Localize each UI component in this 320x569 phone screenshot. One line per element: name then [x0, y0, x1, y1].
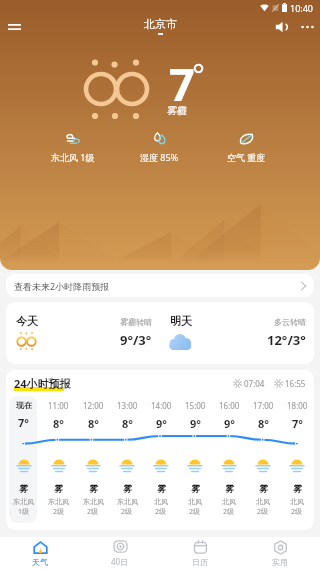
staticText: 12:00	[83, 400, 104, 411]
staticText: 雾	[19, 483, 28, 494]
button[interactable]: More options	[294, 14, 320, 40]
staticText: 湿度 85%	[140, 151, 179, 163]
staticText: 东北风	[13, 497, 34, 506]
staticText: 2级	[155, 507, 167, 517]
button[interactable]: 雾	[246, 448, 280, 517]
staticText: 雾	[293, 483, 302, 494]
staticText: 查看未来2小时降雨预报	[14, 280, 110, 292]
staticText: 东北风 1级	[51, 151, 95, 163]
button[interactable]: 日历	[160, 537, 240, 569]
button[interactable]: 雾	[6, 448, 41, 517]
staticText: 16:55	[285, 378, 306, 389]
button[interactable]: 查看未来2小时降雨预报	[6, 274, 314, 297]
button[interactable]: 雾	[212, 448, 246, 517]
button[interactable]: Voice broadcast	[268, 14, 294, 40]
staticText: 北京市	[144, 17, 177, 31]
staticText: 2级	[53, 507, 65, 517]
button[interactable]: 东北风 1级	[30, 133, 116, 163]
staticText: 雾	[54, 483, 63, 494]
staticText: 2级	[189, 507, 201, 517]
staticText: 9°	[190, 416, 201, 431]
staticText: 40日	[111, 556, 129, 567]
staticText: 9°	[224, 416, 235, 431]
button[interactable]: 天气	[0, 537, 80, 569]
staticText: 8°	[258, 416, 269, 431]
staticText: 2级	[257, 507, 269, 517]
staticText: 日历	[192, 557, 208, 567]
staticText: 2级	[223, 507, 235, 517]
staticText: 空气 重度	[227, 151, 266, 163]
button[interactable]: 空气 重度	[203, 133, 290, 163]
staticText: 07:04	[244, 378, 265, 389]
staticText: 东北风	[117, 497, 138, 506]
staticText: 9°	[156, 416, 167, 431]
staticText: 北风	[290, 497, 304, 506]
staticText: 7°	[292, 416, 303, 431]
staticText: 雾霾	[167, 104, 187, 117]
staticText: 1级	[18, 507, 30, 517]
button[interactable]: 实用	[240, 537, 320, 569]
staticText: 2级	[291, 507, 303, 517]
staticText: 雾	[157, 483, 166, 494]
staticText: 8°	[53, 416, 64, 431]
staticText: 2级	[121, 507, 133, 517]
staticText: 8°	[88, 416, 99, 431]
staticText: 雾	[259, 483, 268, 494]
button[interactable]: 明天	[160, 302, 314, 364]
button[interactable]: 北京市	[144, 17, 177, 35]
button[interactable]: 雾	[110, 448, 144, 517]
staticText: 17:00	[253, 400, 274, 411]
button[interactable]: 40日	[80, 537, 160, 569]
staticText: 今天	[16, 314, 38, 328]
staticText: 雾	[89, 483, 98, 494]
button[interactable]: 雾	[178, 448, 212, 517]
button[interactable]: 雾	[76, 448, 110, 517]
staticText: 雾	[191, 483, 200, 494]
staticText: 2级	[87, 507, 99, 517]
staticText: 18:00	[287, 400, 308, 411]
staticText: 14:00	[151, 400, 172, 411]
staticText: 实用	[272, 557, 288, 567]
button[interactable]: 雾	[41, 448, 76, 517]
staticText: 天气	[32, 557, 48, 567]
staticText: 北风	[256, 497, 270, 506]
staticText: 13:00	[117, 400, 138, 411]
staticText: 7	[169, 53, 195, 114]
staticText: 雾霾转晴	[120, 317, 152, 327]
staticText: 多云转晴	[274, 317, 306, 327]
staticText: 12°/3°	[267, 331, 306, 349]
staticText: 11:00	[48, 400, 69, 411]
button[interactable]: Menu	[2, 15, 26, 39]
button[interactable]: 湿度 85%	[116, 133, 203, 163]
staticText: 9°/3°	[120, 331, 152, 349]
staticText: 东北风	[48, 497, 69, 506]
staticText: 明天	[170, 314, 192, 328]
staticText: 雾	[123, 483, 132, 494]
staticText: 现在	[16, 400, 32, 410]
staticText: 10:40	[290, 2, 314, 14]
staticText: 北风	[188, 497, 202, 506]
staticText: 7°	[18, 415, 29, 430]
staticText: 北风	[154, 497, 168, 506]
staticText: 8°	[122, 416, 133, 431]
staticText: 雾	[225, 483, 234, 494]
staticText: 东北风	[83, 497, 104, 506]
staticText: 16:00	[219, 400, 240, 411]
button[interactable]: 今天	[6, 302, 160, 364]
staticText: 15:00	[185, 400, 206, 411]
staticText: 24小时预报	[14, 376, 71, 391]
button[interactable]: 雾	[280, 448, 314, 517]
staticText: 北风	[222, 497, 236, 506]
button[interactable]: 雾	[144, 448, 178, 517]
